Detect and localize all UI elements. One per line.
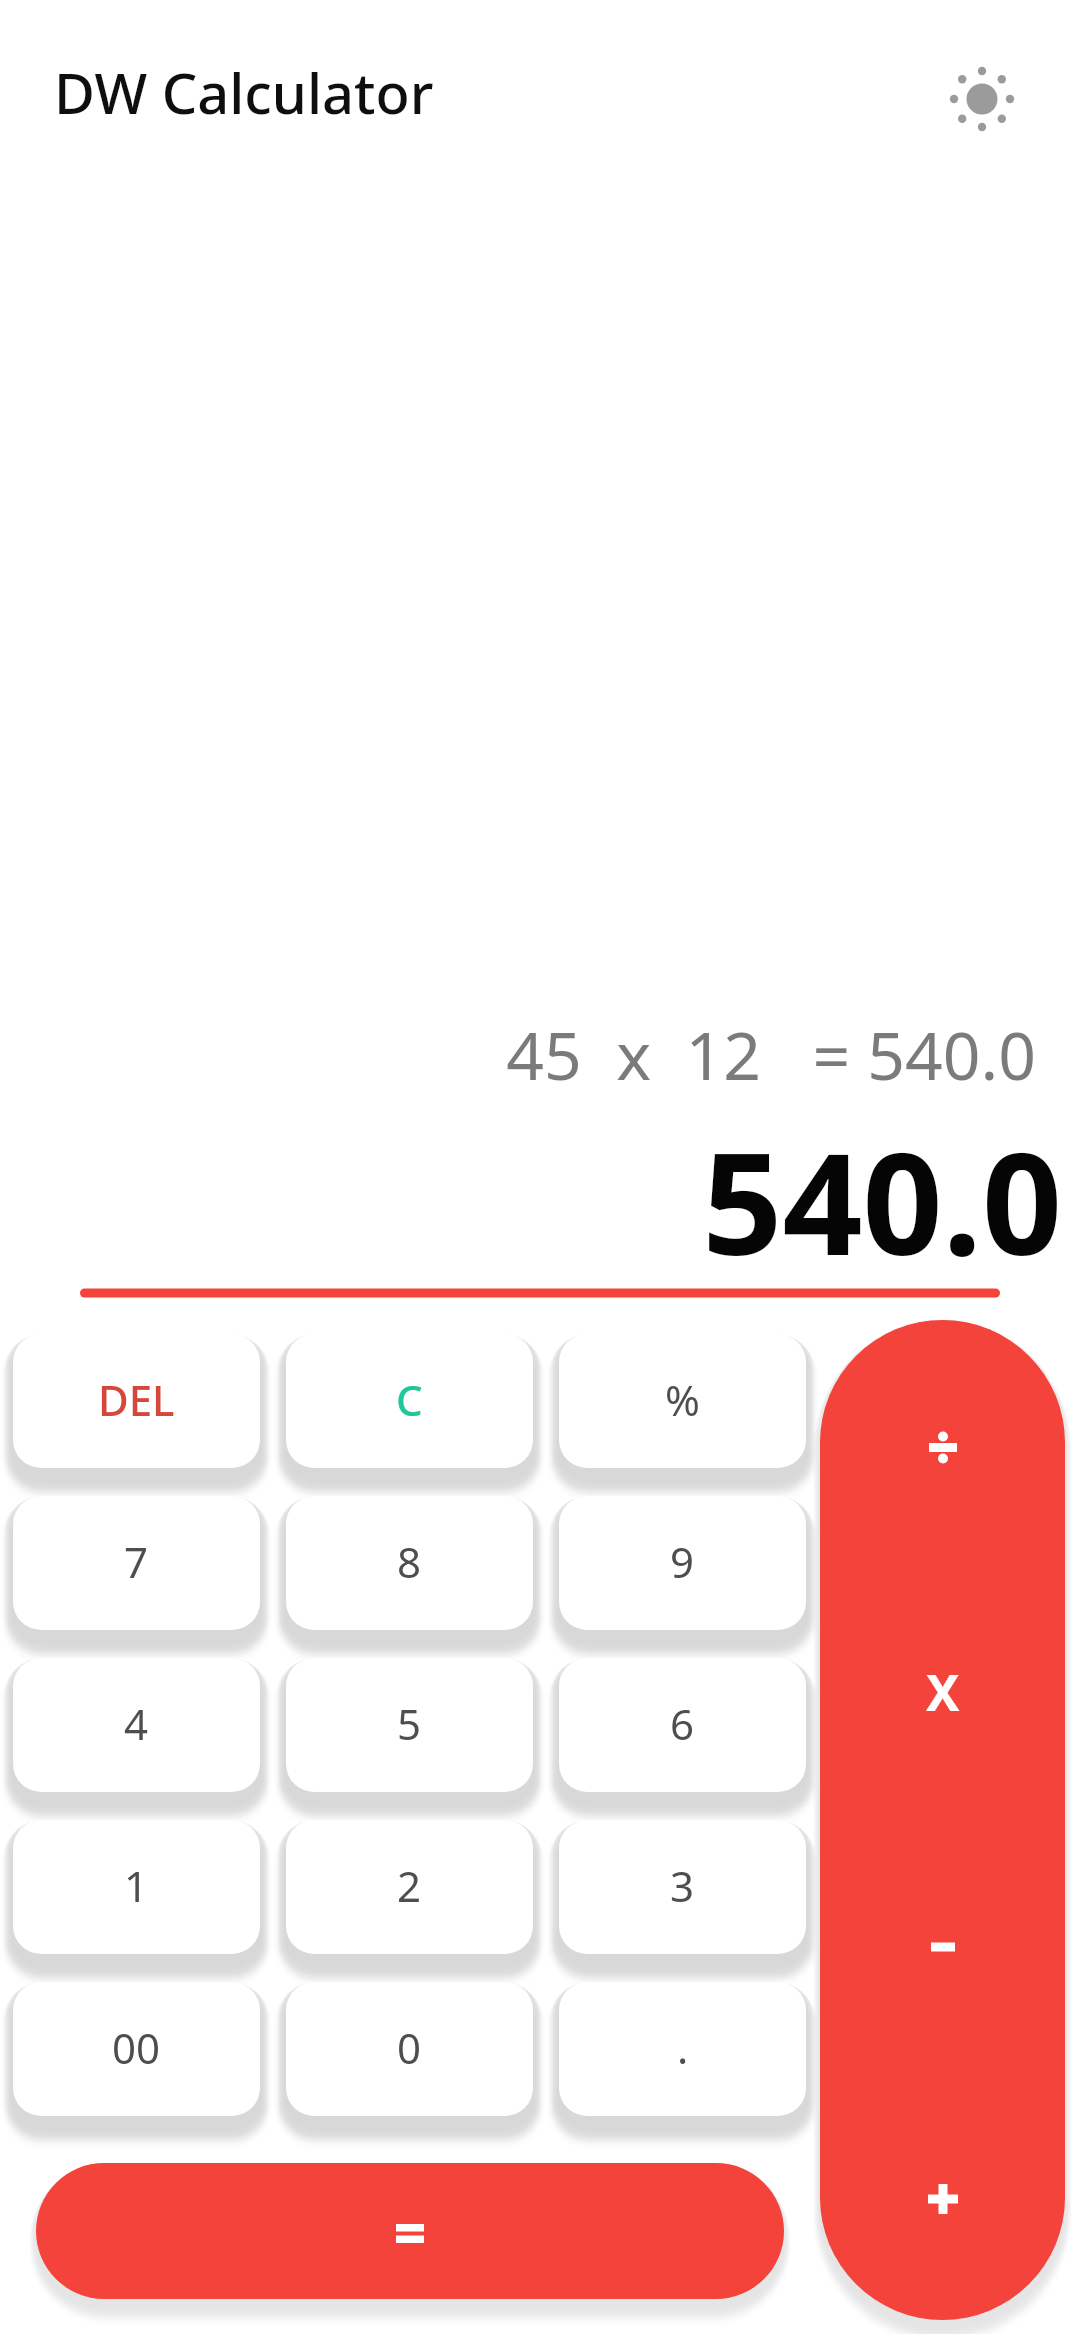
staticText: 5 <box>397 1695 422 1752</box>
staticText: 9 <box>670 1533 695 1590</box>
staticText: 540.0 <box>0 1105 1062 1296</box>
staticText: 2 <box>397 1857 422 1914</box>
button[interactable]: 4 <box>13 1658 260 1792</box>
staticText: 8 <box>397 1533 422 1590</box>
staticText: DW Calculator <box>54 54 434 130</box>
button[interactable]: 7 <box>13 1496 260 1630</box>
staticText: C <box>396 1371 423 1428</box>
staticText: 7 <box>124 1533 149 1590</box>
button[interactable]: Add <box>820 2070 1065 2320</box>
button[interactable]: % <box>559 1334 806 1468</box>
button[interactable]: DEL <box>13 1334 260 1468</box>
staticText: X <box>926 1658 960 1726</box>
button[interactable]: 5 <box>286 1658 533 1792</box>
button[interactable]: 00 <box>13 1982 260 2116</box>
button[interactable]: Divide <box>820 1320 1065 1570</box>
staticText: . <box>677 2019 689 2076</box>
button[interactable]: 1 <box>13 1820 260 1954</box>
button[interactable]: Toggle theme <box>922 39 1042 159</box>
button[interactable]: Multiply <box>820 1570 1065 1820</box>
staticText: % <box>665 1371 700 1428</box>
staticText: 1 <box>124 1857 149 1914</box>
staticText: 45 x 12 = 540.0 <box>0 1009 1036 1099</box>
staticText: 3 <box>670 1857 695 1914</box>
button[interactable]: 8 <box>286 1496 533 1630</box>
button[interactable]: 2 <box>286 1820 533 1954</box>
staticText: 6 <box>670 1695 695 1752</box>
button[interactable]: 9 <box>559 1496 806 1630</box>
staticText: DEL <box>98 1371 175 1428</box>
button[interactable]: Equals <box>36 2163 784 2299</box>
button[interactable]: . <box>559 1982 806 2116</box>
staticText: 00 <box>112 2019 161 2076</box>
button[interactable]: Subtract <box>820 1820 1065 2070</box>
staticText: 4 <box>124 1695 149 1752</box>
staticText: 0 <box>397 2019 422 2076</box>
button[interactable]: 0 <box>286 1982 533 2116</box>
button[interactable]: 3 <box>559 1820 806 1954</box>
button[interactable]: C <box>286 1334 533 1468</box>
button[interactable]: 6 <box>559 1658 806 1792</box>
